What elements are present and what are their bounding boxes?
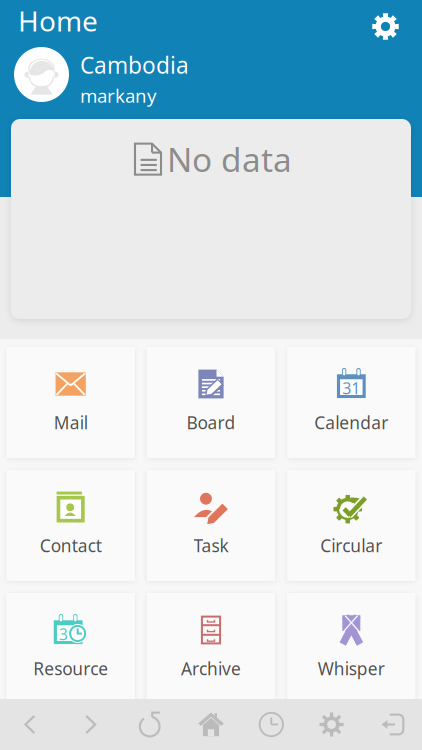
button[interactable]: 31 (287, 347, 415, 458)
button[interactable]: Circular (287, 470, 415, 581)
staticText: Cambodia (80, 50, 189, 80)
button[interactable]: Refresh (121, 699, 181, 750)
staticText: Mail (54, 411, 88, 434)
button[interactable]: Settings (362, 3, 409, 50)
button[interactable]: Back (0, 699, 60, 750)
button[interactable]: Contact (6, 470, 135, 581)
staticText: 31 (342, 377, 360, 399)
staticText: Board (186, 411, 235, 434)
staticText: Calendar (314, 411, 388, 434)
staticText: Whisper (318, 657, 385, 680)
button[interactable]: Archive (147, 593, 275, 704)
button[interactable]: History (241, 699, 301, 750)
button[interactable]: Whisper (287, 593, 415, 704)
staticText: Circular (320, 534, 382, 557)
button[interactable]: Home (181, 699, 241, 750)
staticText: 3 (59, 623, 68, 645)
button[interactable]: 3 (6, 593, 135, 704)
staticText: Resource (33, 657, 108, 680)
button[interactable]: Board (147, 347, 275, 458)
staticText: Archive (181, 657, 241, 680)
staticText: Home (18, 2, 98, 39)
button[interactable]: Forward (60, 699, 121, 750)
staticText: No data (167, 137, 292, 181)
button[interactable]: Task (147, 470, 275, 581)
staticText: markany (80, 83, 157, 108)
staticText: Task (193, 534, 228, 557)
button[interactable]: Log out (362, 699, 422, 750)
button[interactable]: Settings (301, 699, 362, 750)
staticText: Contact (40, 534, 102, 557)
button[interactable]: Mail (6, 347, 135, 458)
